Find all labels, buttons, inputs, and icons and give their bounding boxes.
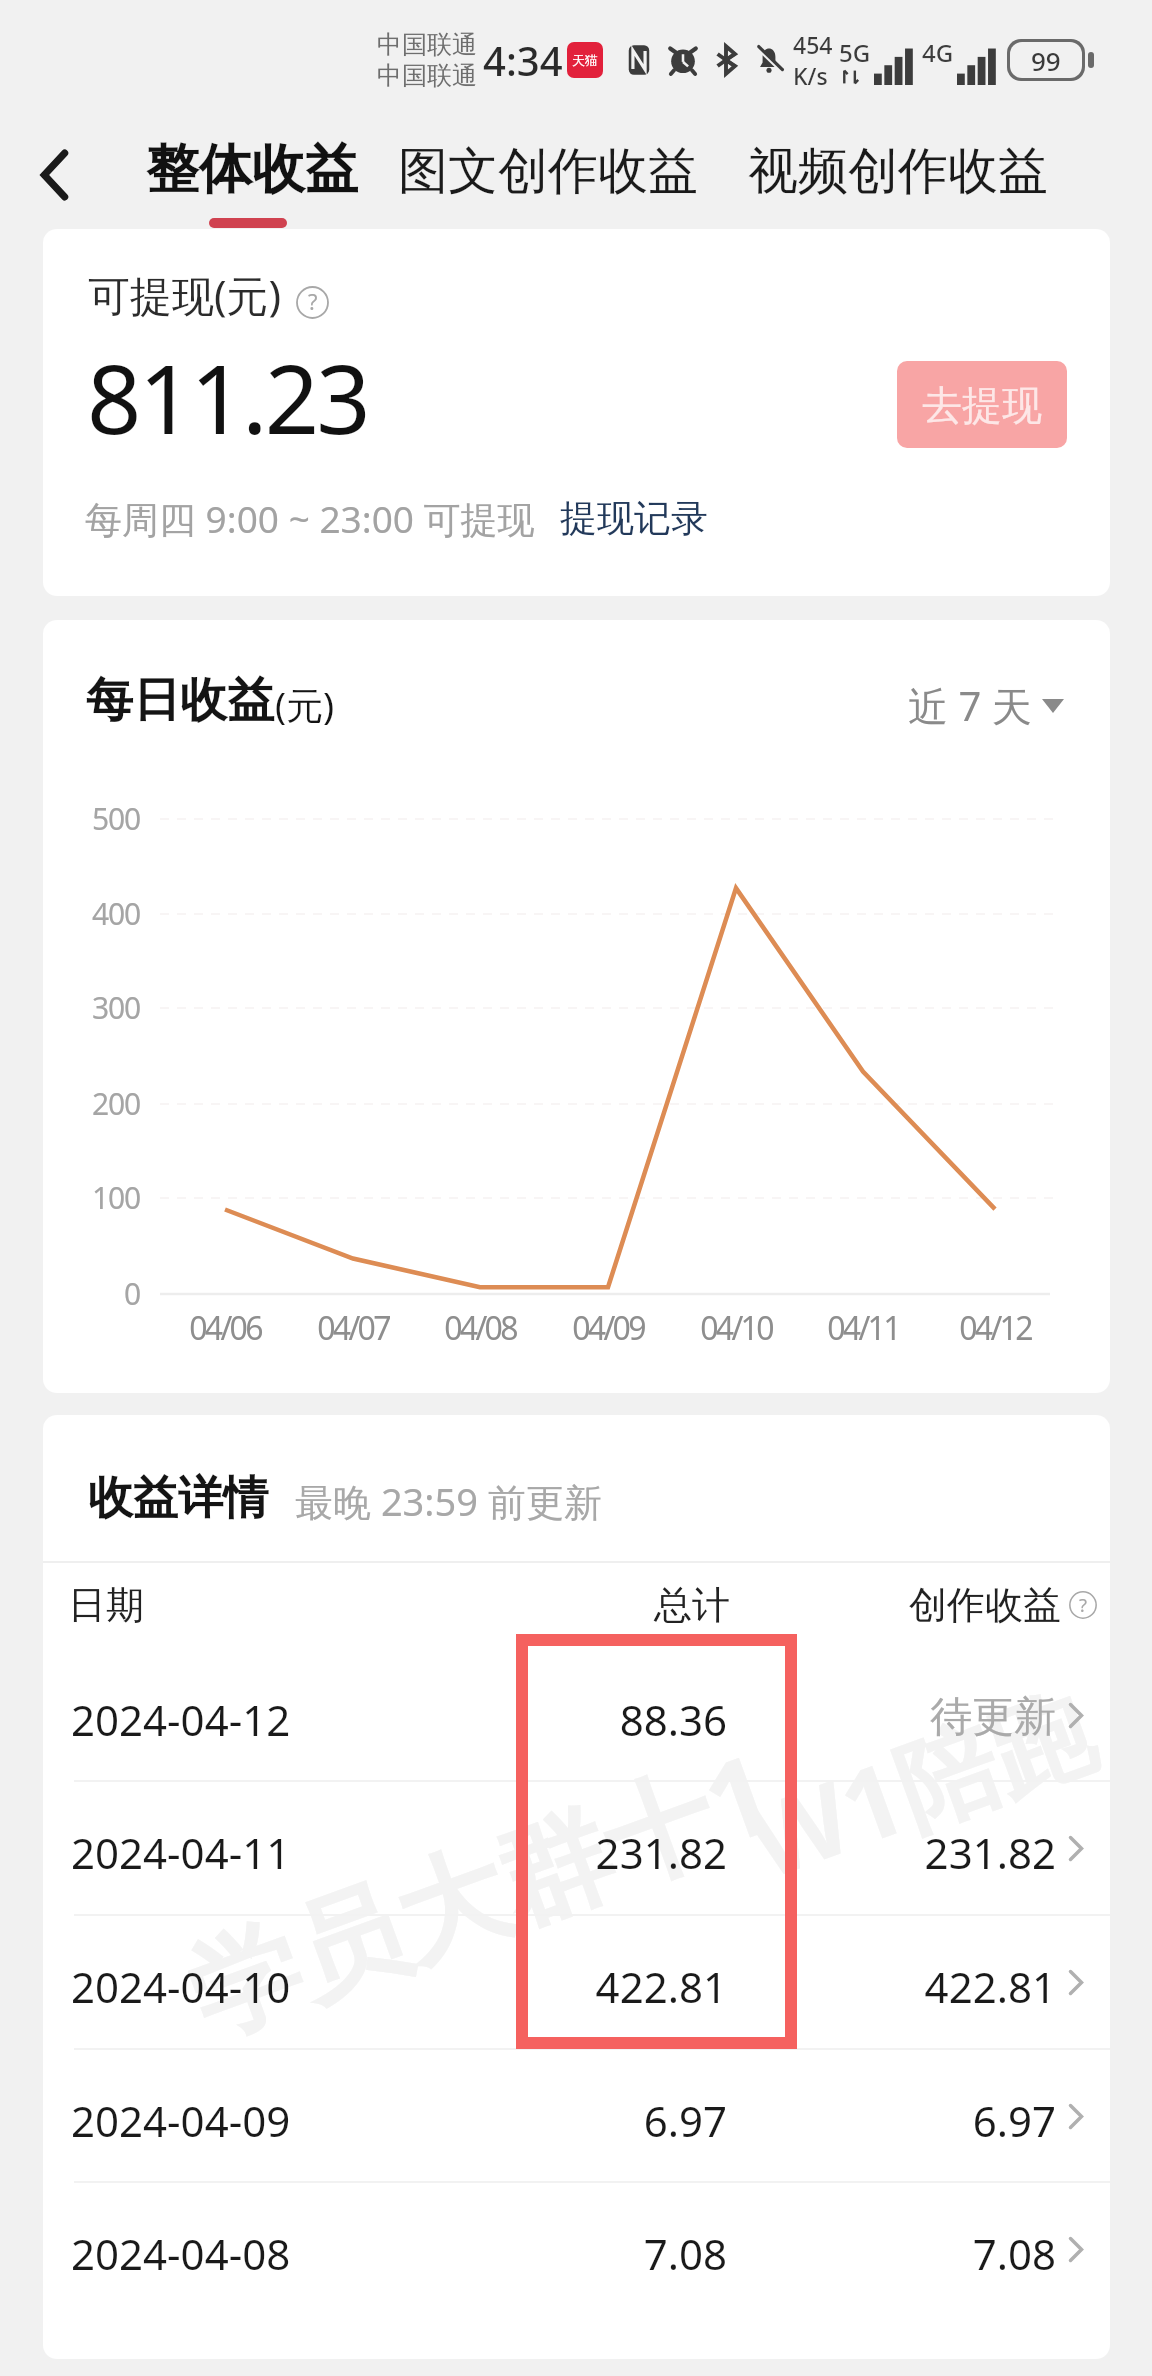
button[interactable]: Back	[14, 135, 94, 215]
staticText: 6.97	[427, 2092, 727, 2149]
button[interactable]: 去提现	[897, 361, 1067, 448]
button[interactable]: 整体收益	[146, 136, 358, 203]
button[interactable]: 2024-04-11	[43, 1815, 1110, 1885]
staticText: 整体收益	[146, 136, 358, 203]
button[interactable]: 帮助	[293, 283, 331, 321]
staticText: 231.82	[427, 1824, 727, 1881]
staticText: (元)	[275, 679, 335, 730]
staticText: 6.97	[736, 2092, 1056, 2149]
staticText: W1陪跑	[730, 1659, 1110, 1908]
staticText: 04/08	[410, 1306, 550, 1350]
staticText: 04/09	[538, 1306, 678, 1350]
staticText: 04/07	[283, 1306, 423, 1350]
staticText: 7.08	[427, 2225, 727, 2282]
staticText: 收益详情	[88, 1470, 268, 1527]
staticText: 422.81	[736, 1958, 1056, 2015]
staticText: 2024-04-10	[71, 1958, 291, 2015]
staticText: 近 7 天	[908, 678, 1032, 733]
staticText: 7.08	[736, 2225, 1056, 2282]
staticText: 每日收益	[86, 671, 274, 730]
staticText: 可提现(元)	[88, 266, 282, 323]
staticText: 200	[43, 1083, 140, 1124]
staticText: 5G	[839, 36, 871, 69]
staticText: 811.23	[87, 332, 368, 461]
staticText: 提现记录	[560, 495, 708, 542]
staticText: 中国联通	[377, 60, 477, 91]
button[interactable]: 2024-04-09	[43, 2083, 1110, 2153]
staticText: 4G	[922, 36, 954, 69]
staticText: 4:34	[483, 33, 563, 87]
staticText: 2024-04-08	[71, 2225, 291, 2282]
staticText: 454	[793, 29, 833, 60]
staticText: 去提现	[922, 380, 1042, 430]
staticText: 日期	[68, 1581, 144, 1629]
staticText: 422.81	[427, 1958, 727, 2015]
staticText: 04/10	[666, 1306, 806, 1350]
staticText: 04/12	[925, 1306, 1065, 1350]
button[interactable]: 2024-04-08	[43, 2216, 1110, 2286]
staticText: 图文创作收益	[398, 140, 698, 203]
staticText: 400	[43, 893, 140, 934]
staticText: 待更新	[736, 1691, 1056, 1744]
staticText: 300	[43, 987, 140, 1028]
button[interactable]: 近 7 天	[908, 678, 1064, 733]
staticText: 2024-04-09	[71, 2092, 291, 2149]
staticText: 04/11	[793, 1306, 933, 1350]
staticText: 每周四 9:00 ~ 23:00 可提现	[85, 493, 535, 544]
button[interactable]: 提现记录	[560, 495, 708, 542]
staticText: 04/06	[155, 1306, 295, 1350]
button[interactable]: 创作收益说明	[1069, 1591, 1097, 1619]
staticText: 总计	[430, 1581, 730, 1629]
staticText: ?	[1079, 1592, 1088, 1617]
staticText: 99	[1031, 43, 1061, 78]
button[interactable]: 2024-04-10	[43, 1949, 1110, 2019]
staticText: 500	[43, 798, 140, 839]
staticText: 创作收益	[741, 1581, 1061, 1629]
staticText: 2024-04-11	[71, 1824, 291, 1881]
staticText: K/s	[793, 60, 828, 91]
button[interactable]: 2024-04-12	[43, 1682, 1110, 1752]
staticText: 天猫	[572, 52, 598, 68]
staticText: 88.36	[427, 1691, 727, 1748]
staticText: 0	[43, 1273, 140, 1314]
staticText: ?	[308, 287, 318, 317]
button[interactable]: 图文创作收益	[398, 140, 698, 203]
button[interactable]: 视频创作收益	[748, 140, 1048, 203]
staticText: 最晚 23:59 前更新	[295, 1475, 602, 1527]
staticText: 2024-04-12	[71, 1691, 291, 1748]
staticText: 视频创作收益	[748, 140, 1048, 203]
staticText: 中国联通	[377, 29, 477, 60]
staticText: 231.82	[736, 1824, 1056, 1881]
staticText: 100	[43, 1177, 140, 1218]
staticText: 学员大群十1	[166, 1715, 793, 2065]
